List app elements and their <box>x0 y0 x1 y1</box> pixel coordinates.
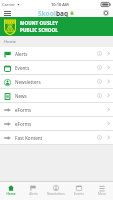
staticText: More <box>98 192 106 196</box>
button[interactable]: Newsletters <box>44 182 67 200</box>
button[interactable]: Info <box>96 78 103 85</box>
staticText: MOUNT OUSLEY <box>20 20 58 26</box>
button[interactable]: Events <box>67 182 90 200</box>
staticText: eForms <box>15 107 32 113</box>
button[interactable]: Settings <box>98 9 113 17</box>
staticText: 10:10 AM <box>51 2 69 7</box>
staticText: PUBLIC SCHOOL <box>20 27 59 33</box>
button[interactable]: eForms <box>0 117 113 130</box>
button[interactable]: Info <box>96 92 103 99</box>
button[interactable]: Newsletters <box>0 75 113 88</box>
staticText: News <box>15 93 27 99</box>
button[interactable]: Alerts <box>22 182 44 200</box>
button[interactable]: Events <box>0 61 113 74</box>
staticText: Events <box>15 65 30 71</box>
button[interactable]: More <box>90 182 113 200</box>
button[interactable]: Alerts <box>0 47 113 60</box>
staticText: Fast Kontent <box>15 135 43 141</box>
staticText: Alerts <box>29 192 38 196</box>
staticText: Home <box>4 39 16 45</box>
staticText: Alerts <box>15 51 28 57</box>
button[interactable]: Info <box>96 134 103 141</box>
staticText: Newsletters <box>47 192 65 196</box>
button[interactable]: eForms <box>0 103 113 116</box>
staticText: bag <box>56 9 69 17</box>
staticText: eForms <box>15 121 32 127</box>
button[interactable]: News <box>0 89 113 102</box>
button[interactable]: Info <box>96 50 103 57</box>
button[interactable]: Home <box>0 182 22 200</box>
button[interactable]: Menu <box>0 9 15 17</box>
button[interactable]: Fast Kontent <box>0 131 113 144</box>
staticText: Home <box>6 192 16 196</box>
staticText: Events <box>74 192 84 196</box>
staticText: Carrier <box>2 2 16 7</box>
button[interactable]: Info <box>96 64 103 71</box>
staticText: Newsletters <box>15 79 41 85</box>
staticText: Skool <box>38 9 56 17</box>
